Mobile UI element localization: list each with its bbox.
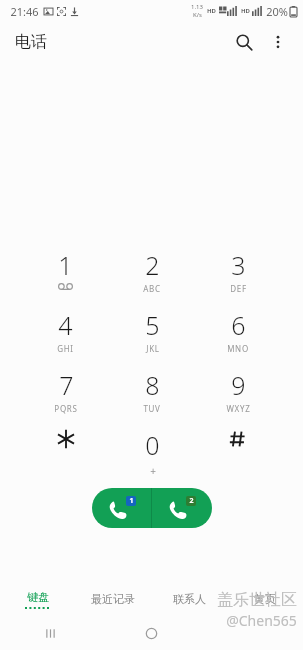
button[interactable]: 5 bbox=[109, 308, 195, 354]
button[interactable]: 0 bbox=[109, 428, 195, 478]
staticText: MNO bbox=[227, 343, 249, 354]
staticText: + bbox=[150, 464, 156, 478]
button[interactable] bbox=[195, 428, 281, 450]
staticText: 20% bbox=[266, 4, 288, 19]
staticText: @Chen565 bbox=[226, 611, 297, 630]
button[interactable]: 联系人 bbox=[151, 582, 227, 616]
staticText: 2 bbox=[145, 248, 160, 282]
staticText: HD bbox=[207, 7, 216, 15]
button[interactable]: 8 bbox=[109, 368, 195, 414]
button[interactable]: 7 bbox=[22, 368, 109, 414]
staticText: 1 bbox=[58, 248, 73, 282]
button[interactable]: Home bbox=[101, 616, 202, 650]
staticText: 5 bbox=[145, 308, 160, 342]
button[interactable]: Recent apps bbox=[0, 616, 101, 650]
button[interactable]: 9 bbox=[195, 368, 281, 414]
button[interactable]: 4 bbox=[22, 308, 109, 354]
staticText: 2 bbox=[189, 496, 194, 506]
button[interactable]: 最近记录 bbox=[75, 582, 151, 616]
staticText: K/s bbox=[193, 11, 202, 19]
button[interactable]: Search bbox=[227, 25, 261, 59]
staticText: 黄页 bbox=[254, 592, 276, 606]
staticText: 最近记录 bbox=[91, 592, 135, 606]
button[interactable]: 6 bbox=[195, 308, 281, 354]
staticText: HD bbox=[241, 7, 250, 15]
button[interactable]: Back bbox=[202, 616, 303, 650]
button[interactable]: Call with SIM 2 bbox=[152, 488, 212, 528]
staticText: 电话 bbox=[15, 32, 47, 52]
staticText: 9 bbox=[231, 368, 246, 402]
staticText: 3 bbox=[231, 248, 246, 282]
staticText: 4 bbox=[58, 308, 73, 342]
staticText: 1.13 bbox=[191, 3, 203, 11]
button[interactable]: 3 bbox=[195, 248, 281, 294]
staticText: 联系人 bbox=[173, 592, 206, 606]
staticText: 键盘 bbox=[27, 590, 49, 604]
staticText: 盖乐世社区 bbox=[217, 590, 297, 610]
staticText: GHI bbox=[57, 343, 74, 354]
staticText: DEF bbox=[230, 283, 247, 294]
staticText: TUV bbox=[143, 403, 161, 414]
button[interactable]: 1 bbox=[22, 248, 109, 290]
staticText: ABC bbox=[143, 283, 161, 294]
button[interactable]: 2 bbox=[109, 248, 195, 294]
button[interactable]: 黄页 bbox=[227, 582, 303, 616]
staticText: 8 bbox=[145, 368, 160, 402]
staticText: 21:46 bbox=[10, 4, 39, 19]
staticText: 1 bbox=[129, 496, 134, 506]
staticText: 6 bbox=[231, 308, 246, 342]
staticText: WXYZ bbox=[226, 403, 251, 414]
button[interactable]: More options bbox=[261, 25, 295, 59]
staticText: 7 bbox=[59, 368, 74, 402]
button[interactable]: 键盘 bbox=[0, 582, 75, 616]
button[interactable]: Call with SIM 1 bbox=[92, 488, 151, 528]
staticText: 0 bbox=[145, 428, 160, 462]
button[interactable] bbox=[22, 428, 109, 450]
staticText: JKL bbox=[146, 343, 160, 354]
staticText: PQRS bbox=[54, 403, 78, 414]
